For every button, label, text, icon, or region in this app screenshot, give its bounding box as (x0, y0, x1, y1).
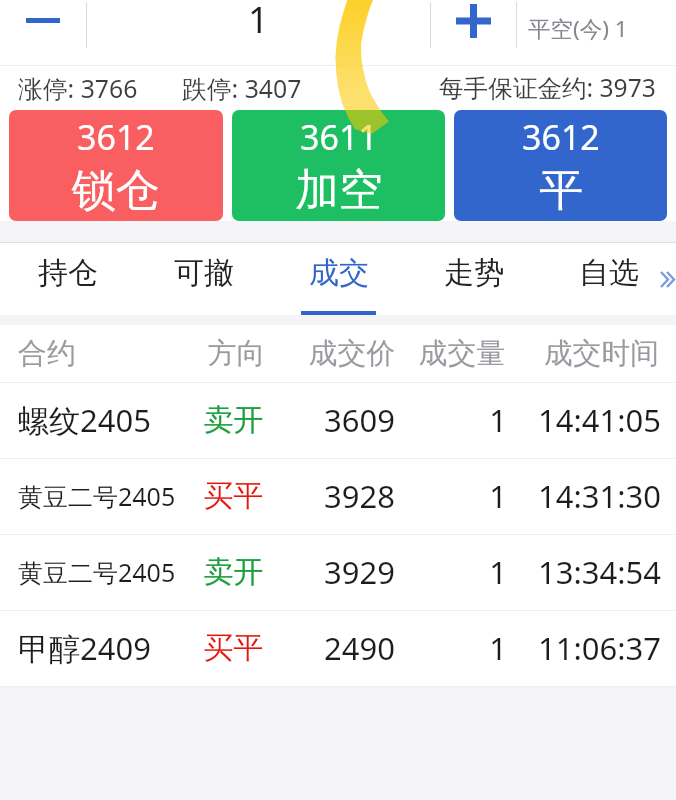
button[interactable]: 黄豆二号2405 (0, 459, 676, 534)
staticText: 1 (395, 399, 507, 441)
staticText: 平 (539, 163, 583, 218)
button[interactable]: 走势 (406, 243, 541, 315)
staticText: 1 (395, 627, 507, 669)
button[interactable]: 甲醇2409 (0, 611, 676, 686)
staticText: 11:06:37 (507, 627, 661, 669)
button[interactable]: 持仓 (0, 243, 136, 315)
staticText: 加空 (295, 163, 383, 218)
button[interactable]: 可撤 (136, 243, 271, 315)
staticText: 买平 (187, 477, 280, 515)
staticText: 平空(今) 1 (528, 13, 628, 44)
button[interactable]: 黄豆二号2405 (0, 535, 676, 610)
staticText: 持仓 (38, 254, 98, 292)
staticText: 可撤 (174, 254, 234, 292)
staticText: 黄豆二号2405 (18, 479, 176, 513)
staticText: 3609 (280, 399, 395, 441)
button[interactable]: 成交 (271, 243, 406, 315)
staticText: 每手保证金约: 3973 (439, 71, 656, 105)
staticText: 甲醇2409 (18, 627, 151, 669)
button[interactable]: More tabs (652, 260, 676, 284)
button[interactable]: 3612 (9, 110, 223, 221)
staticText: 3612 (77, 114, 155, 160)
staticText: 3612 (522, 114, 600, 160)
staticText: 合约 (18, 335, 76, 371)
staticText: 黄豆二号2405 (18, 555, 176, 589)
staticText: 成交价 (280, 335, 395, 371)
staticText: 1 (248, 0, 269, 44)
button[interactable]: 螺纹2405 (0, 383, 676, 458)
staticText: 成交量 (393, 335, 505, 371)
staticText: 螺纹2405 (18, 399, 151, 441)
button[interactable]: Decrease quantity (0, 0, 86, 65)
staticText: 成交时间 (505, 335, 659, 371)
staticText: 跌停: 3407 (182, 71, 302, 105)
staticText: 卖开 (187, 401, 280, 439)
staticText: 涨停: 3766 (18, 71, 138, 105)
staticText: 3928 (280, 475, 395, 517)
staticText: 13:34:54 (507, 551, 661, 593)
button[interactable]: 3611 (232, 110, 445, 221)
staticText: 卖开 (187, 553, 280, 591)
staticText: 14:41:05 (507, 399, 661, 441)
staticText: 方向 (190, 335, 283, 371)
staticText: 2490 (280, 627, 395, 669)
button[interactable]: 自选 (541, 243, 676, 315)
button[interactable]: 平空(今) 1 (517, 0, 676, 65)
staticText: 成交 (309, 254, 369, 292)
staticText: 走势 (444, 254, 504, 292)
staticText: 买平 (187, 629, 280, 667)
staticText: 1 (395, 551, 507, 593)
staticText: 锁仓 (72, 163, 160, 218)
button[interactable]: Increase quantity (431, 0, 516, 65)
staticText: 自选 (579, 254, 639, 292)
staticText: 1 (395, 475, 507, 517)
staticText: 3611 (300, 114, 378, 160)
staticText: 14:31:30 (507, 475, 661, 517)
staticText: 3929 (280, 551, 395, 593)
button[interactable]: 3612 (454, 110, 667, 221)
